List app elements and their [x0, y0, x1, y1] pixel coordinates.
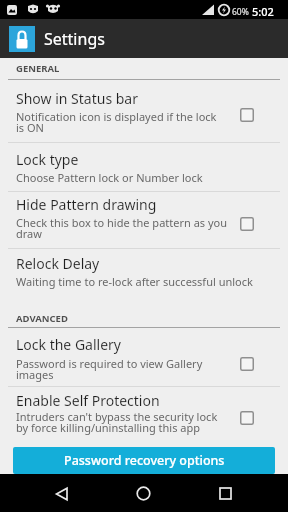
- button[interactable]: [130, 480, 157, 507]
- button[interactable]: Show in Status bar: [0, 80, 288, 142]
- button[interactable]: [212, 480, 239, 507]
- button[interactable]: Password recovery options: [13, 447, 275, 474]
- staticText: GENERAL: [16, 62, 60, 75]
- button[interactable]: [48, 480, 75, 507]
- staticText: Notification icon is displayed if the lo…: [16, 109, 278, 136]
- button[interactable]: Lock type: [0, 143, 288, 191]
- staticText: Password recovery options: [64, 452, 225, 469]
- staticText: Password is required to view Gallery ima…: [16, 356, 278, 383]
- staticText: Show in Status bar: [16, 89, 138, 108]
- staticText: Choose Pattern lock or Number lock: [16, 170, 278, 185]
- staticText: Settings: [44, 28, 105, 50]
- staticText: Lock the Gallery: [16, 335, 121, 354]
- button[interactable]: Enable Self Protection: [0, 387, 288, 447]
- staticText: 5:02: [252, 4, 274, 19]
- staticText: Check this box to hide the pattern as yo…: [16, 215, 278, 242]
- staticText: Enable Self Protection: [16, 391, 160, 410]
- button[interactable]: Lock the Gallery: [0, 328, 288, 386]
- staticText: Lock type: [16, 150, 79, 169]
- staticText: 60%: [232, 6, 249, 18]
- staticText: Hide Pattern drawing: [16, 195, 157, 214]
- button[interactable]: Relock Delay: [0, 249, 288, 311]
- staticText: Waiting time to re-lock after successful…: [16, 274, 278, 289]
- staticText: Intruders can't bypass the security lock…: [16, 409, 278, 436]
- button[interactable]: Hide Pattern drawing: [0, 192, 288, 248]
- staticText: ADVANCED: [16, 312, 68, 325]
- staticText: Relock Delay: [16, 254, 100, 273]
